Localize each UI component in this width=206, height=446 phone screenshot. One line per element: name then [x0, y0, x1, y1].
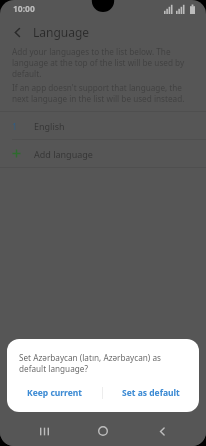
button[interactable]: Home	[88, 416, 118, 446]
staticText: Keep current	[27, 387, 83, 399]
staticText: Add your languages to the list below. Th…	[12, 46, 194, 79]
button[interactable]: Set as default	[103, 380, 199, 406]
staticText: Add language	[34, 148, 93, 160]
button[interactable]: Keep current	[7, 380, 102, 406]
staticText: Language	[33, 24, 90, 40]
button[interactable]: Back	[147, 416, 177, 446]
button[interactable]: Recent apps	[29, 416, 59, 446]
staticText: Set Azərbaycan (latın, Azərbaycan) as de…	[19, 352, 187, 374]
staticText: Set as default	[122, 387, 180, 399]
staticText: 10:00	[13, 3, 35, 15]
staticText: If an app doesn't support that language,…	[12, 82, 194, 104]
button[interactable]: Add language	[0, 140, 206, 167]
button[interactable]: Navigate up	[6, 21, 28, 43]
staticText: English	[34, 120, 65, 132]
staticText: 1	[12, 120, 18, 132]
